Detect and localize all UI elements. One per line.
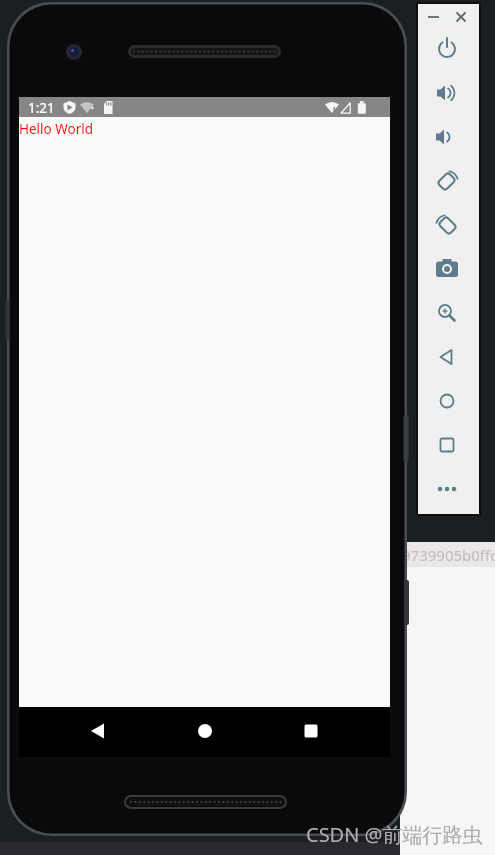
button[interactable] bbox=[431, 253, 463, 285]
button[interactable] bbox=[431, 209, 463, 241]
button[interactable] bbox=[431, 121, 463, 153]
button[interactable] bbox=[431, 33, 463, 65]
button[interactable]: Hello World bbox=[19, 120, 94, 138]
button[interactable] bbox=[431, 429, 463, 461]
button[interactable] bbox=[431, 385, 463, 417]
button[interactable] bbox=[431, 341, 463, 373]
button[interactable] bbox=[431, 473, 463, 505]
button[interactable] bbox=[431, 165, 463, 197]
staticText: 1:21 bbox=[28, 99, 55, 117]
button[interactable] bbox=[431, 77, 463, 109]
staticText: 9739905b0ffc bbox=[402, 545, 495, 565]
staticText: CSDN @前端行路虫 bbox=[306, 821, 483, 848]
button[interactable] bbox=[431, 297, 463, 329]
